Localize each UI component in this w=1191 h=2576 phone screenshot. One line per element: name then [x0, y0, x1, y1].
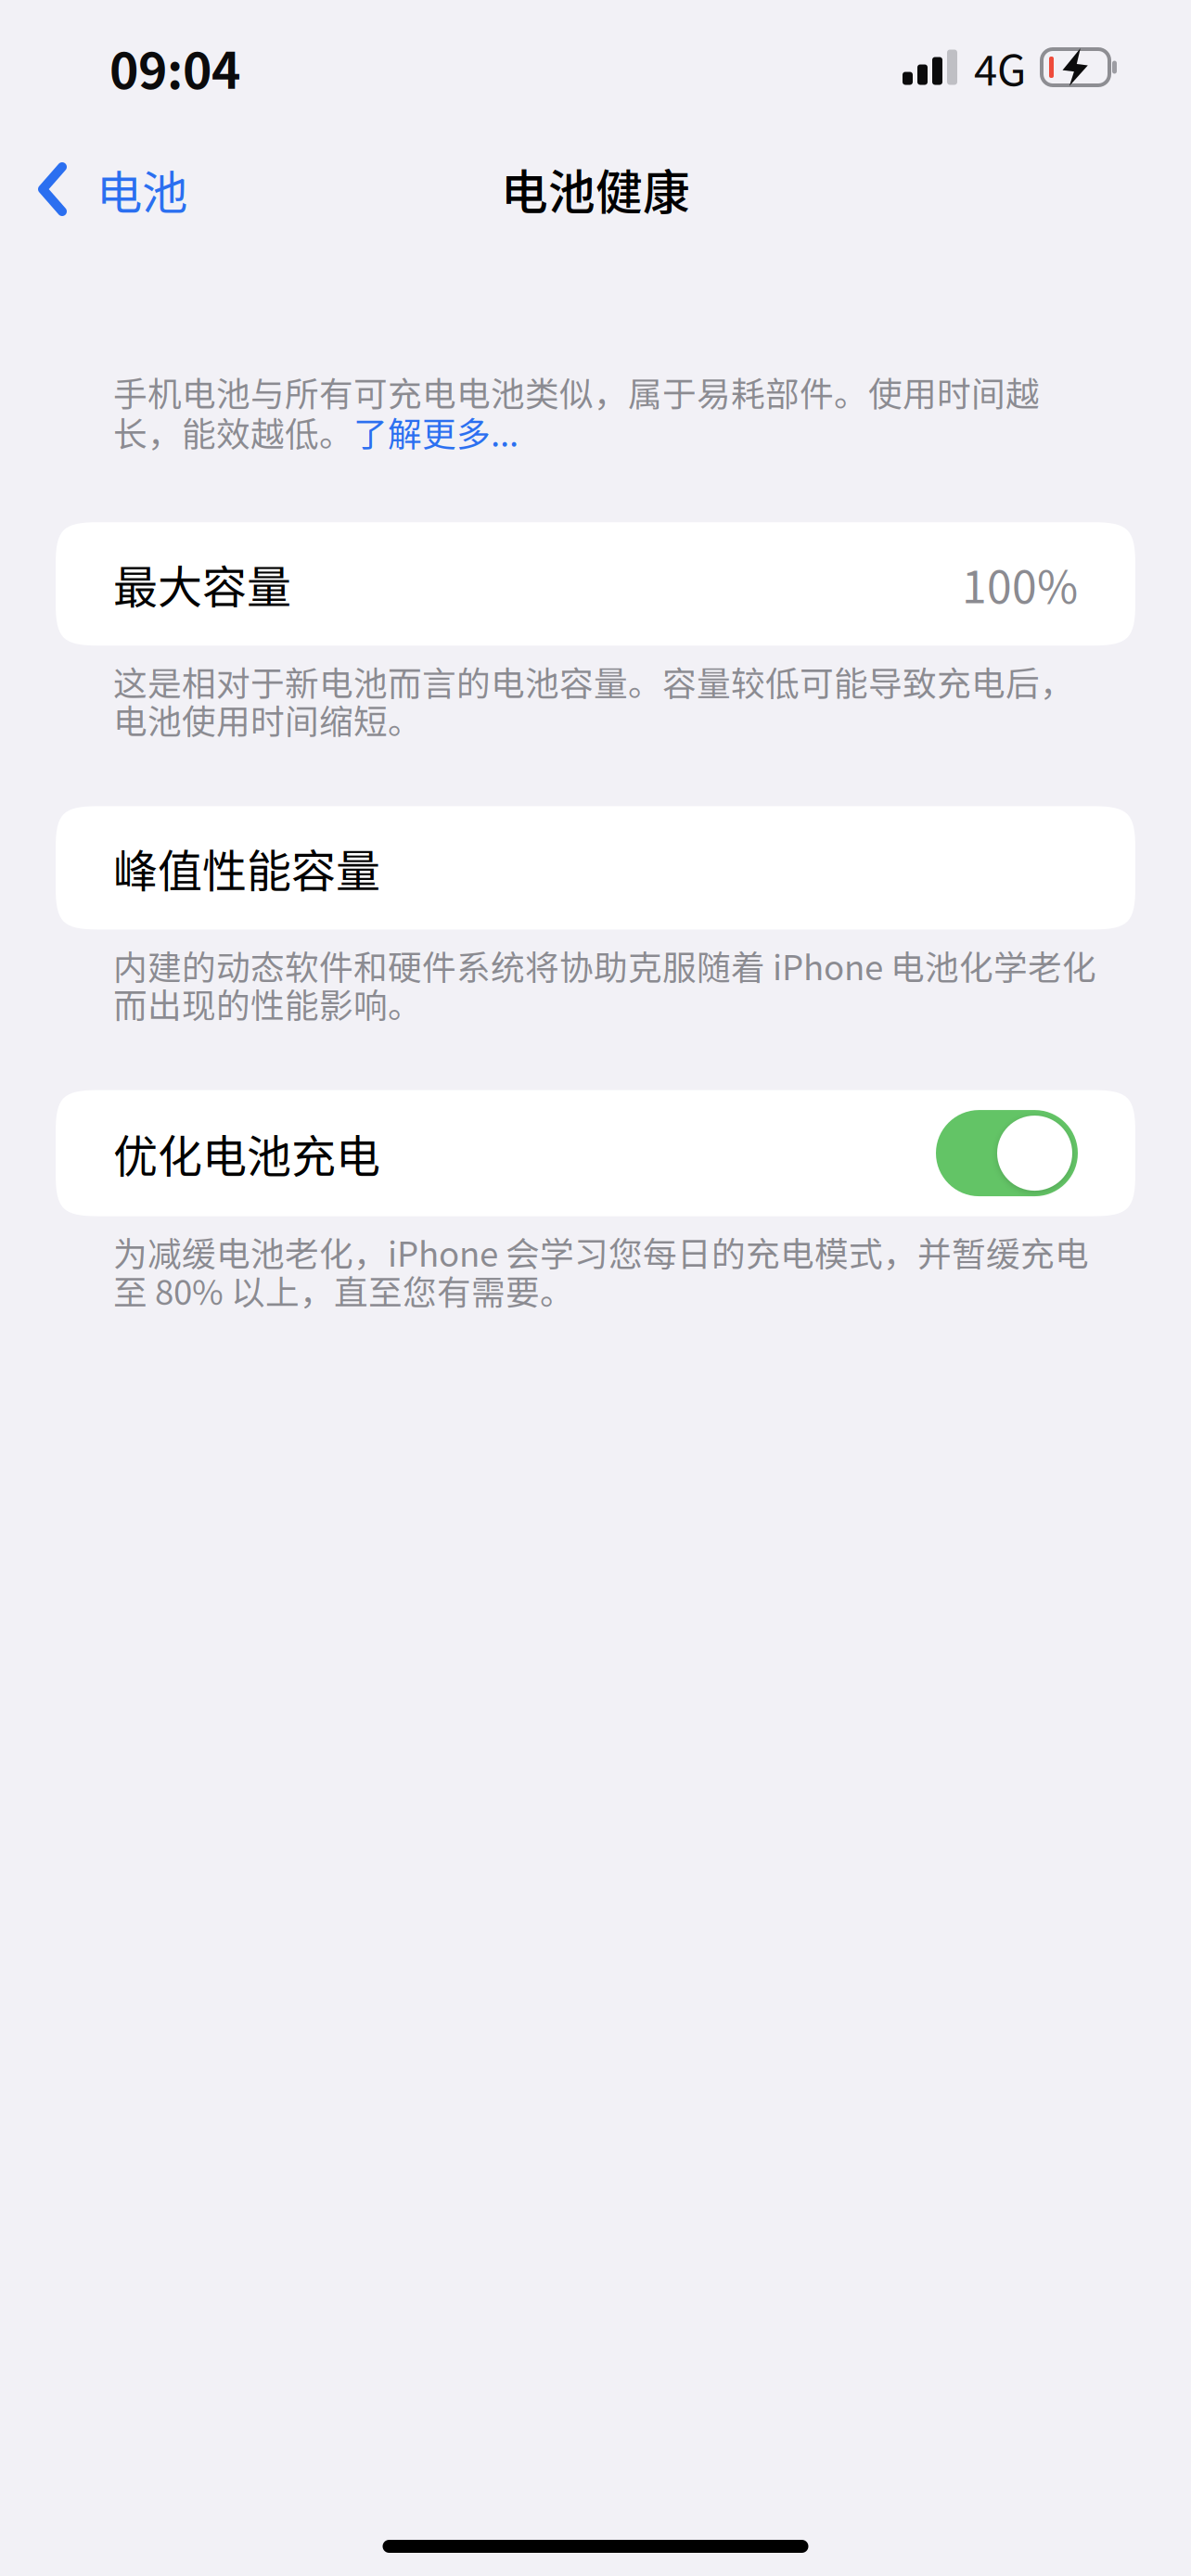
- staticText: 这是相对于新电池而言的电池容量。容量较低可能导致充电后，: [113, 657, 1074, 706]
- button[interactable]: 电池: [0, 134, 215, 244]
- staticText: 为减缓电池老化，iPhone 会学习您每日的充电模式，并暂缓充电: [113, 1227, 1089, 1277]
- button[interactable]: 峰值性能容量: [0, 806, 1191, 930]
- staticText: 电池: [96, 156, 187, 222]
- staticText: 至 80% 以上，直至您有需要。: [113, 1265, 574, 1315]
- staticText: 电池健康: [501, 155, 690, 223]
- staticText: 09:04: [109, 31, 240, 103]
- staticText: 峰值性能容量: [113, 836, 380, 900]
- staticText: 了解更多...: [353, 407, 519, 456]
- staticText: 而出现的性能影响。: [113, 979, 422, 1028]
- staticText: 手机电池与所有可充电电池类似，属于易耗部件。使用时间越: [113, 367, 1040, 416]
- staticText: 优化电池充电: [113, 1121, 380, 1185]
- button[interactable]: 了解更多...: [353, 407, 519, 456]
- button[interactable]: 优化电池充电: [936, 1110, 1078, 1196]
- staticText: 最大容量: [113, 552, 291, 616]
- staticText: 4G: [974, 37, 1026, 98]
- staticText: 电池使用时间缩短。: [113, 695, 422, 744]
- staticText: 长，能效越低。: [113, 407, 353, 456]
- staticText: 100%: [962, 552, 1078, 616]
- staticText: 内建的动态软件和硬件系统将协助克服随着 iPhone 电池化学老化: [113, 941, 1096, 990]
